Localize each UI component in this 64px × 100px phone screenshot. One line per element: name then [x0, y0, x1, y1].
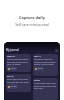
button[interactable]: Mood calm	[7, 66, 17, 71]
button[interactable]: Mood good	[7, 84, 18, 89]
button[interactable]: Fri 09	[33, 78, 58, 100]
staticText: Capture daily	[19, 15, 45, 20]
staticText: okay	[38, 67, 43, 70]
staticText: Sat 10	[7, 75, 14, 78]
staticText: Took a slow walk today and noticed the w…	[7, 58, 30, 65]
button[interactable]: Sun 11	[33, 54, 58, 76]
button[interactable]: Search	[55, 49, 58, 52]
staticText: My journal	[6, 48, 19, 52]
staticText: Fri 09	[34, 79, 40, 82]
staticText: calm	[11, 67, 16, 70]
staticText: Wrote three short lines about things tha…	[34, 82, 57, 89]
staticText: Breathing exercises helped me settle dow…	[34, 58, 57, 65]
staticText: good	[11, 85, 17, 88]
staticText: Mon 12	[7, 55, 15, 58]
button[interactable]: Mon 12	[6, 54, 31, 72]
button[interactable]: Sat 10	[6, 74, 31, 92]
staticText: Small wins and a quiet morning with tea …	[7, 78, 30, 83]
staticText: Sun 11	[34, 55, 42, 58]
button[interactable]: Mood okay	[34, 66, 44, 71]
staticText: Self care mini journal	[15, 22, 49, 27]
